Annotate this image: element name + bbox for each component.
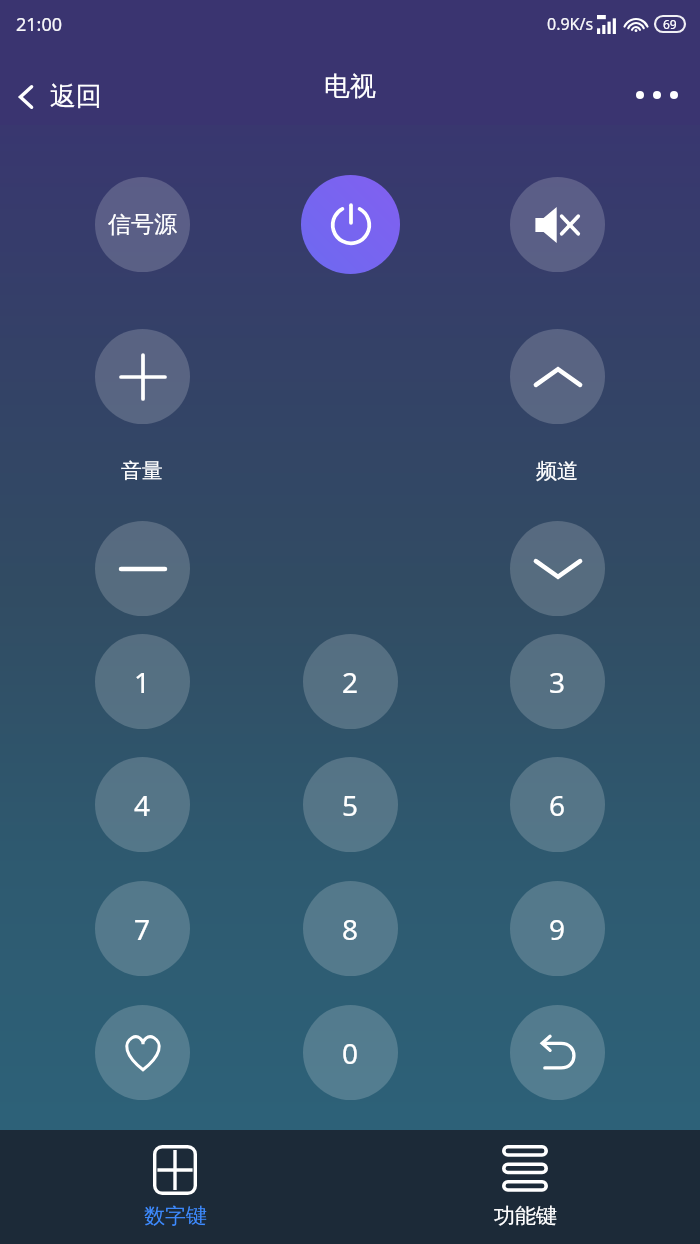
button[interactable]: Power <box>301 175 400 274</box>
button[interactable]: 8 <box>303 881 398 976</box>
button[interactable]: 1 <box>95 634 190 729</box>
button[interactable]: Channel up <box>510 329 605 424</box>
button[interactable]: 数字键 <box>0 1130 350 1244</box>
button[interactable]: 6 <box>510 757 605 852</box>
staticText: 5 <box>342 786 359 824</box>
staticText: 4 <box>134 786 151 824</box>
button[interactable]: More options <box>616 77 700 125</box>
button[interactable]: Mute <box>510 177 605 272</box>
staticText: 音量 <box>121 458 163 484</box>
staticText: 6 <box>549 786 566 824</box>
staticText: 0 <box>342 1034 359 1072</box>
button[interactable]: 7 <box>95 881 190 976</box>
staticText: 频道 <box>536 458 578 484</box>
staticText: 2 <box>342 663 359 701</box>
staticText: 信号源 <box>108 210 177 239</box>
staticText: 21:00 <box>16 12 63 37</box>
button[interactable]: Volume down <box>95 521 190 616</box>
button[interactable]: 5 <box>303 757 398 852</box>
button[interactable]: 信号源 <box>95 177 190 272</box>
staticText: 8 <box>342 910 359 948</box>
button[interactable]: 9 <box>510 881 605 976</box>
staticText: 1 <box>134 663 151 701</box>
button[interactable]: Back <box>510 1005 605 1100</box>
button[interactable]: 功能键 <box>350 1130 700 1244</box>
staticText: 电视 <box>324 70 376 103</box>
staticText: 数字键 <box>144 1203 207 1229</box>
button[interactable]: Channel down <box>510 521 605 616</box>
staticText: 功能键 <box>494 1203 557 1229</box>
staticText: 9 <box>549 910 566 948</box>
staticText: 3 <box>549 663 566 701</box>
button[interactable]: 3 <box>510 634 605 729</box>
staticText: 0.9K/s <box>547 13 594 35</box>
staticText: 返回 <box>50 80 102 113</box>
button[interactable]: Favorite <box>95 1005 190 1100</box>
staticText: 7 <box>134 910 151 948</box>
staticText: 69 <box>663 16 677 32</box>
button[interactable]: Volume up <box>95 329 190 424</box>
button[interactable]: 2 <box>303 634 398 729</box>
button[interactable]: 4 <box>95 757 190 852</box>
button[interactable]: 0 <box>303 1005 398 1100</box>
button[interactable]: 返回 <box>0 70 120 125</box>
